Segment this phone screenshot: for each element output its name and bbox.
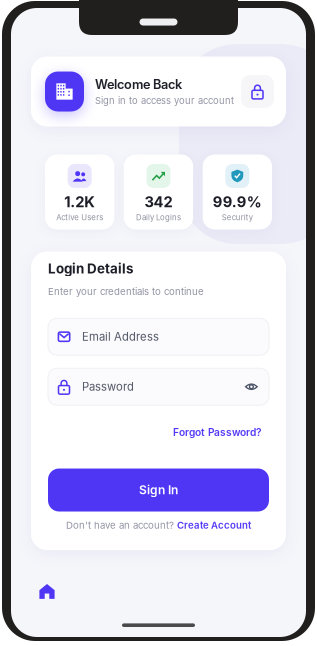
button[interactable]: Forgot Password? (173, 426, 262, 438)
staticText: 99.9% (213, 193, 262, 211)
staticText: Enter your credentials to continue (48, 286, 204, 297)
staticText: Security (222, 213, 253, 222)
button[interactable]: Security (241, 75, 274, 108)
staticText: Sign in to access your account (95, 95, 234, 106)
button[interactable]: Home (36, 580, 58, 602)
staticText: Don't have an account? (66, 519, 177, 531)
staticText: 342 (144, 193, 172, 211)
staticText: Login Details (48, 260, 133, 277)
button[interactable]: Sign In (48, 468, 269, 511)
staticText: Email Address (82, 330, 159, 344)
staticText: 1.2K (64, 193, 95, 211)
button[interactable]: Create Account (177, 519, 251, 531)
staticText: Welcome Back (95, 77, 182, 92)
staticText: Forgot Password? (173, 426, 262, 438)
staticText: Password (82, 380, 134, 394)
staticText: Daily Logins (136, 213, 181, 222)
staticText: Sign In (139, 483, 178, 497)
staticText: Active Users (56, 213, 103, 222)
staticText: Create Account (177, 519, 251, 531)
